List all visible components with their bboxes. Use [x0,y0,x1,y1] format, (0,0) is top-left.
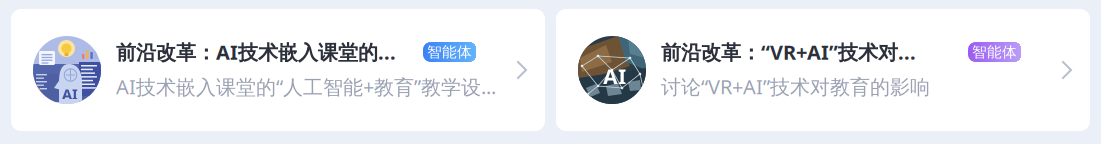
staticText: AI [603,62,626,90]
staticText: AI [62,84,78,103]
button[interactable]: AI [556,9,1090,131]
staticText: 前沿改革：“VR+AI”技术对... [661,39,916,65]
button[interactable]: AI [11,9,545,131]
staticText: 前沿改革：AI技术嵌入课堂的... [116,39,396,65]
staticText: 讨论“VR+AI”技术对教育的影响 [661,73,930,100]
staticText: 智能体 [972,43,1017,61]
staticText: 智能体 [427,43,472,61]
staticText: AI技术嵌入课堂的“人工智能+教育”教学设... [116,73,496,100]
